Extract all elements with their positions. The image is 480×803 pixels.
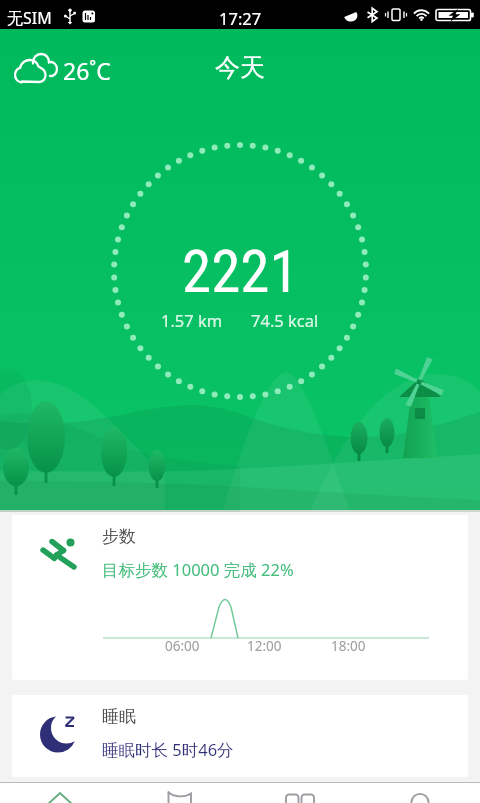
staticText: 1.57 km xyxy=(161,309,223,331)
button[interactable]: Activity xyxy=(120,783,240,803)
staticText: 睡眠 xyxy=(102,706,136,727)
button[interactable]: 睡眠 xyxy=(12,695,468,777)
staticText: 目标步数 10000 完成 22% xyxy=(102,558,294,581)
staticText: 18:00 xyxy=(331,637,366,655)
staticText: 睡眠时长 5时46分 xyxy=(102,738,234,761)
button[interactable]: Home xyxy=(0,783,120,803)
staticText: 12:00 xyxy=(247,637,282,655)
staticText: 74.5 kcal xyxy=(251,309,319,331)
button[interactable]: Profile xyxy=(360,783,480,803)
button[interactable]: 26˚C xyxy=(8,49,119,88)
staticText: 步数 xyxy=(102,526,136,547)
staticText: 无SIM xyxy=(7,7,52,29)
staticText: 26˚C xyxy=(63,55,111,86)
button[interactable]: Discover xyxy=(240,783,360,803)
staticText: 2221 xyxy=(182,237,299,306)
button[interactable]: 步数 xyxy=(12,515,468,680)
staticText: 17:27 xyxy=(219,7,262,29)
staticText: 今天 xyxy=(215,52,265,83)
staticText: 06:00 xyxy=(165,637,200,655)
